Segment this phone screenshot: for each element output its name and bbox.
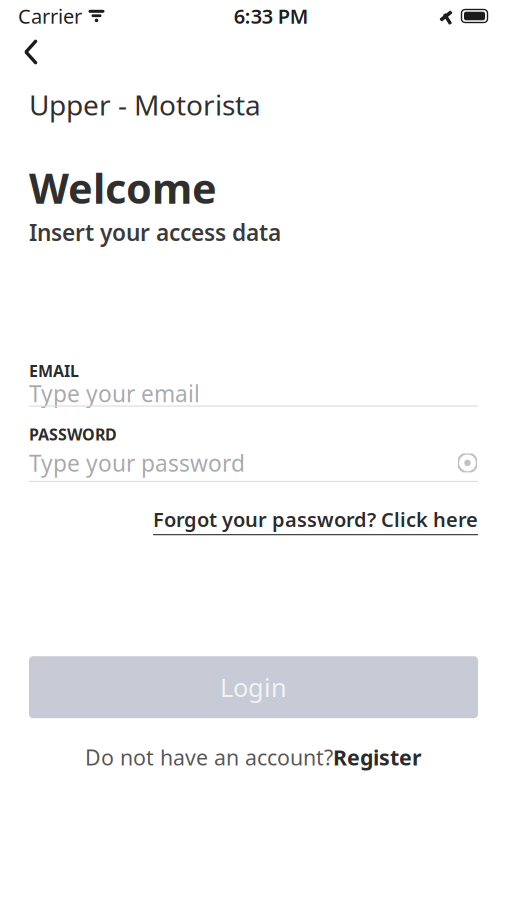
staticText: Type your email — [29, 378, 200, 408]
staticText: Register — [333, 743, 422, 771]
staticText: 6:33 PM — [234, 3, 309, 29]
button[interactable]: Do not have an account? — [0, 737, 507, 777]
staticText: Carrier — [18, 3, 82, 29]
staticText: Do not have an account? — [85, 743, 333, 771]
button[interactable]: Type your password — [29, 445, 478, 482]
button[interactable]: Login — [29, 656, 478, 718]
button[interactable]: Type your email — [29, 381, 478, 407]
staticText: Type your password — [29, 448, 245, 478]
staticText: EMAIL — [29, 360, 79, 381]
staticText: Login — [220, 670, 287, 704]
staticText: Welcome — [29, 160, 217, 215]
staticText: Insert your access data — [29, 217, 281, 247]
staticText: PASSWORD — [29, 424, 117, 445]
button[interactable]: Forgot your password? Click here — [153, 506, 478, 535]
staticText: Upper - Motorista — [29, 86, 261, 123]
button[interactable]: Back — [8, 30, 54, 74]
staticText: Forgot your password? Click here — [153, 506, 478, 533]
